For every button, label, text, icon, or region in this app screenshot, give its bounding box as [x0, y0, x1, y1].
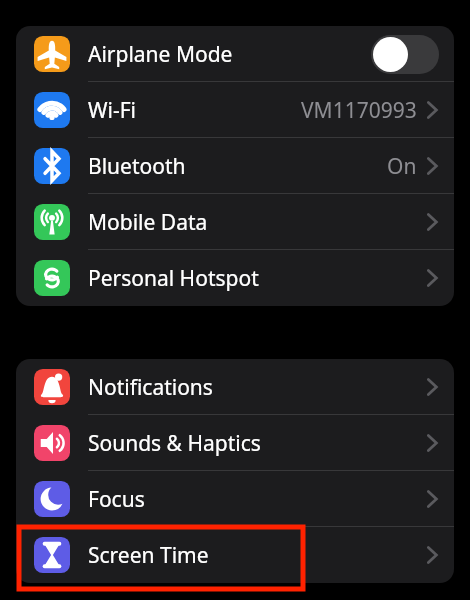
- other: Open: [426, 267, 439, 289]
- other: Open: [426, 376, 439, 398]
- button[interactable]: Notifications: [16, 359, 454, 415]
- button[interactable]: Bluetooth: [16, 138, 454, 194]
- staticText: Wi-Fi: [88, 96, 137, 125]
- other: Open: [426, 99, 439, 121]
- staticText: Focus: [88, 485, 145, 514]
- button[interactable]: Personal Hotspot: [16, 250, 454, 306]
- button[interactable]: Sounds & Haptics: [16, 415, 454, 471]
- other: Open: [426, 488, 439, 510]
- button[interactable]: Airplane Mode: [16, 26, 454, 82]
- staticText: VM1170993: [301, 96, 417, 125]
- staticText: Bluetooth: [88, 152, 186, 181]
- staticText: Notifications: [88, 373, 213, 402]
- staticText: Airplane Mode: [88, 40, 233, 69]
- other: Open: [426, 432, 439, 454]
- button[interactable]: Airplane Mode toggle: [371, 35, 439, 74]
- staticText: On: [387, 152, 417, 181]
- button[interactable]: Screen Time: [16, 527, 454, 583]
- button[interactable]: Wi-Fi: [16, 82, 454, 138]
- button[interactable]: Focus: [16, 471, 454, 527]
- other: Open: [426, 544, 439, 566]
- button[interactable]: Mobile Data: [16, 194, 454, 250]
- other: Open: [426, 155, 439, 177]
- staticText: Mobile Data: [88, 208, 208, 237]
- other: Open: [426, 211, 439, 233]
- staticText: Personal Hotspot: [88, 264, 259, 293]
- staticText: Screen Time: [88, 541, 209, 570]
- staticText: Sounds & Haptics: [88, 429, 261, 458]
